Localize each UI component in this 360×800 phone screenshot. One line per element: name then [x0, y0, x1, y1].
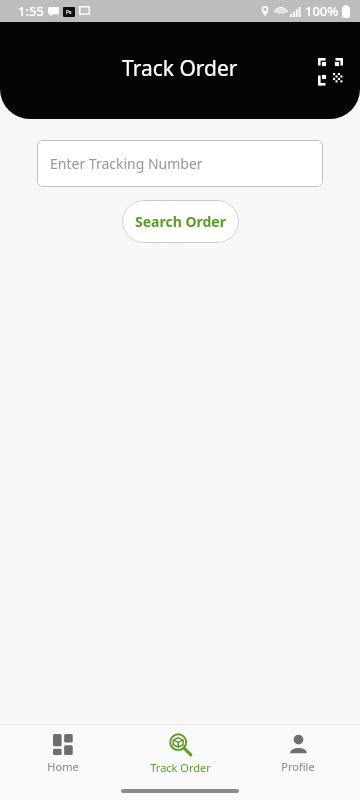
button[interactable]: Scan QR code [316, 56, 344, 84]
button[interactable]: Track Order [125, 729, 235, 779]
staticText: Track Order [150, 760, 211, 775]
staticText: Enter Tracking Number [50, 154, 203, 173]
button[interactable]: Profile [243, 730, 353, 778]
staticText: 100% [305, 2, 339, 20]
staticText: Profile [281, 759, 315, 774]
staticText: Home [47, 759, 79, 774]
button[interactable]: Search Order [122, 200, 239, 243]
button[interactable]: Enter Tracking Number [37, 140, 323, 187]
button[interactable]: Home [8, 730, 118, 778]
staticText: Ps [66, 9, 72, 16]
staticText: 1:55 [18, 2, 44, 20]
staticText: Track Order [122, 54, 238, 83]
staticText: Search Order [135, 212, 226, 231]
